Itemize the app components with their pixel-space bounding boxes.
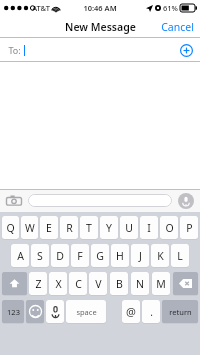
button[interactable]: J <box>131 244 149 267</box>
button[interactable]: R <box>60 216 78 239</box>
staticText: AT&T <box>32 3 50 13</box>
button[interactable]: V <box>89 272 107 295</box>
staticText: . <box>150 305 153 319</box>
staticText: D <box>56 249 64 263</box>
staticText: G <box>96 249 104 263</box>
staticText: W <box>25 221 35 235</box>
button[interactable]: N <box>131 272 149 295</box>
button[interactable]: U <box>120 216 138 239</box>
button[interactable]: E <box>40 216 58 239</box>
button[interactable]: I <box>140 216 158 239</box>
button[interactable]: Add contact <box>180 44 193 57</box>
button[interactable]: D <box>51 244 69 267</box>
staticText: X <box>55 277 62 291</box>
staticText: K <box>157 249 164 263</box>
button[interactable]: return <box>162 300 198 323</box>
button[interactable]: A <box>11 244 29 267</box>
staticText: A <box>17 249 24 263</box>
staticText: 123 <box>7 307 20 317</box>
staticText: Z <box>35 277 42 291</box>
button[interactable]: Dictate <box>46 300 64 323</box>
button[interactable]: space <box>66 300 106 323</box>
staticText: @ <box>126 304 136 319</box>
staticText: N <box>136 277 144 291</box>
button[interactable]: L <box>171 244 189 267</box>
button[interactable]: Cancel <box>155 17 200 37</box>
staticText: 61% <box>163 3 178 13</box>
staticText: T <box>86 221 92 235</box>
staticText: J <box>139 249 142 263</box>
button[interactable]: Z <box>29 272 47 295</box>
staticText: Y <box>106 221 112 235</box>
staticText: I <box>147 221 151 235</box>
staticText: O <box>165 221 174 235</box>
staticText: B <box>116 277 123 291</box>
button[interactable] <box>28 194 172 207</box>
button[interactable]: K <box>151 244 169 267</box>
button[interactable]: G <box>91 244 109 267</box>
button[interactable]: S <box>31 244 49 267</box>
staticText: P <box>186 221 193 235</box>
staticText: Q <box>6 221 15 235</box>
button[interactable]: M <box>152 272 170 295</box>
button[interactable]: W <box>21 216 38 239</box>
staticText: New Message <box>65 20 136 34</box>
button[interactable]: P <box>180 216 198 239</box>
button[interactable]: At sign <box>122 300 140 323</box>
button[interactable]: Backspace <box>173 272 198 295</box>
button[interactable]: T <box>80 216 98 239</box>
button[interactable]: X <box>49 272 67 295</box>
button[interactable]: 123 <box>2 300 24 323</box>
button[interactable]: To: <box>0 38 200 62</box>
button[interactable]: C <box>69 272 87 295</box>
staticText: return <box>169 307 192 317</box>
staticText: 10:46 AM <box>83 3 117 13</box>
staticText: S <box>37 249 43 263</box>
button[interactable]: Emoji <box>26 300 44 323</box>
staticText: Cancel <box>161 20 194 34</box>
button[interactable]: H <box>111 244 129 267</box>
staticText: space <box>76 307 97 317</box>
button[interactable]: Shift <box>2 272 27 295</box>
staticText: E <box>46 221 52 235</box>
staticText: To: <box>8 44 21 56</box>
button[interactable]: F <box>71 244 89 267</box>
button[interactable]: Q <box>2 216 19 239</box>
staticText: C <box>75 277 82 291</box>
button[interactable]: Y <box>100 216 118 239</box>
button[interactable]: O <box>160 216 178 239</box>
button[interactable]: Record audio <box>178 193 194 209</box>
staticText: U <box>125 221 133 235</box>
staticText: F <box>77 249 83 263</box>
staticText: L <box>177 249 183 263</box>
button[interactable]: B <box>110 272 128 295</box>
staticText: H <box>116 249 124 263</box>
button[interactable]: . <box>142 300 160 323</box>
button[interactable]: Camera <box>6 193 22 209</box>
staticText: M <box>156 277 166 291</box>
staticText: R <box>66 221 73 235</box>
staticText: V <box>95 277 102 291</box>
